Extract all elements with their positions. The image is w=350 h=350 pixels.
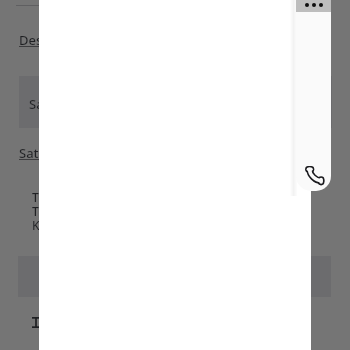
staticText: Thursday, 14:00 — [32, 203, 122, 219]
staticText: Sample text — [29, 95, 103, 113]
staticText: Saturday — [19, 144, 75, 162]
staticText: Kontakt aufnehmen — [32, 217, 147, 233]
staticText: Description — [19, 31, 91, 49]
button[interactable]: More options — [296, 0, 331, 12]
staticText: Tuesday, 10:00 — [32, 189, 116, 205]
button[interactable]: Call — [304, 163, 328, 187]
